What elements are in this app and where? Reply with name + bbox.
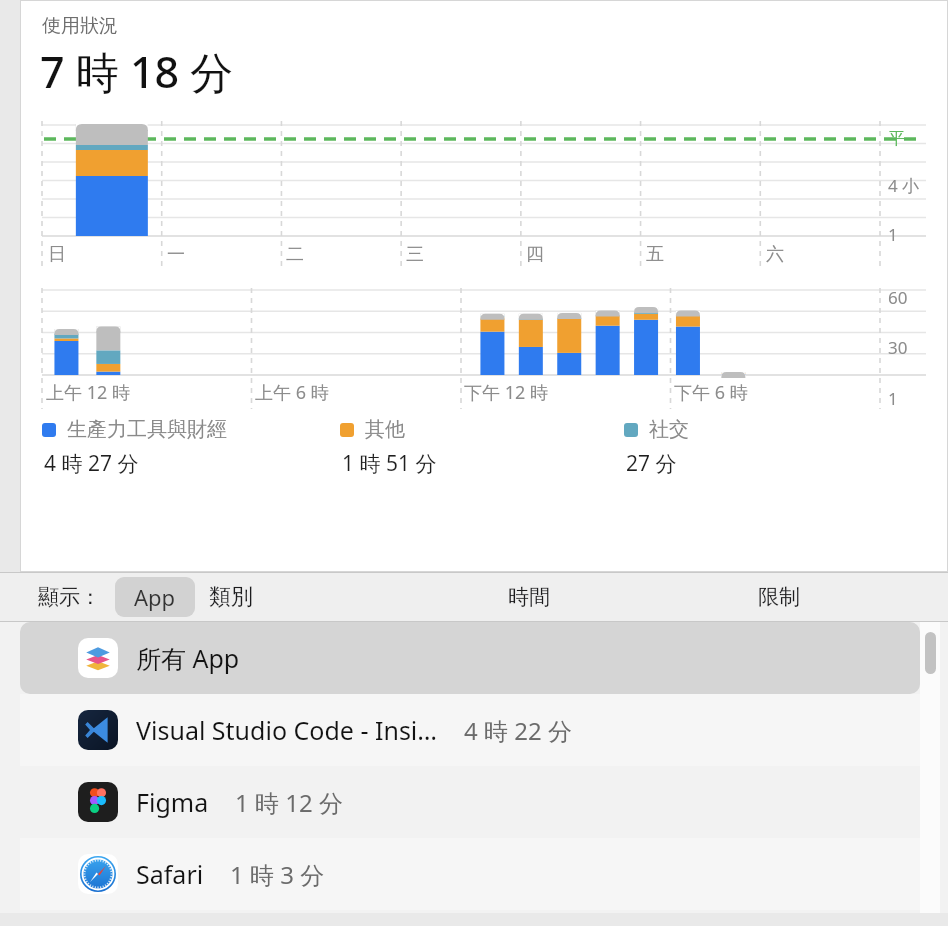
staticText: 60 xyxy=(888,286,908,309)
staticText: 六 xyxy=(766,243,784,266)
staticText: 五 xyxy=(646,243,664,266)
staticText: Figma xyxy=(136,785,209,819)
staticText: 上午 6 時 xyxy=(255,380,329,405)
staticText: 下午 12 時 xyxy=(464,380,548,405)
staticText: 其他 xyxy=(365,417,405,442)
staticText: 30 xyxy=(888,336,908,359)
staticText: 1 時 12 分 xyxy=(235,786,343,819)
staticText: 所有 App xyxy=(136,641,240,675)
staticText: 4 小 xyxy=(888,174,920,197)
staticText: 二 xyxy=(286,243,304,266)
button[interactable]: Figma xyxy=(20,766,920,838)
button[interactable]: App xyxy=(115,577,195,617)
staticText: 三 xyxy=(406,243,424,266)
staticText: Safari xyxy=(136,857,204,891)
staticText: App xyxy=(134,582,176,612)
staticText: 類別 xyxy=(209,583,253,611)
button[interactable]: Safari xyxy=(20,838,920,910)
staticText: 平 xyxy=(888,128,905,149)
staticText: 4 時 22 分 xyxy=(464,714,572,747)
staticText: 一 xyxy=(167,243,185,266)
staticText: 1 時 51 分 xyxy=(342,449,437,478)
staticText: 限制 xyxy=(758,584,800,610)
staticText: 四 xyxy=(526,243,544,266)
staticText: 日 xyxy=(48,243,66,266)
staticText: 1 xyxy=(888,387,898,410)
staticText: 時間 xyxy=(508,584,550,610)
button[interactable]: Visual Studio Code - Insi… xyxy=(20,694,920,766)
button[interactable]: 類別 xyxy=(195,578,267,616)
staticText: 使用狀況 xyxy=(42,14,118,38)
staticText: 上午 12 時 xyxy=(46,380,130,405)
button[interactable]: 所有 App xyxy=(20,622,920,694)
staticText: 生產力工具與財經 xyxy=(67,417,227,442)
staticText: 1 xyxy=(888,223,898,246)
staticText: 1 時 3 分 xyxy=(230,858,325,891)
staticText: Visual Studio Code - Insi… xyxy=(136,713,438,747)
staticText: 7 時 18 分 xyxy=(40,42,234,101)
staticText: 4 時 27 分 xyxy=(44,449,139,478)
staticText: 社交 xyxy=(649,417,689,442)
staticText: 下午 6 時 xyxy=(674,380,748,405)
staticText: 27 分 xyxy=(626,449,677,478)
staticText: 顯示： xyxy=(38,584,101,610)
